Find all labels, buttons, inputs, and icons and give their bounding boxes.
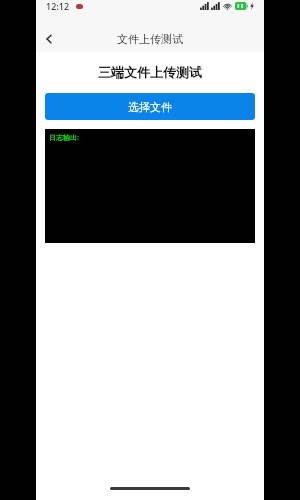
staticText: 三端文件上传测试: [36, 64, 264, 80]
staticText: 文件上传测试: [117, 32, 183, 46]
staticText: 12:12: [46, 0, 70, 12]
button[interactable]: Back: [36, 26, 62, 52]
staticText: 选择文件: [128, 100, 172, 114]
button[interactable]: 选择文件: [45, 93, 255, 120]
staticText: 日志输出:: [49, 133, 79, 143]
